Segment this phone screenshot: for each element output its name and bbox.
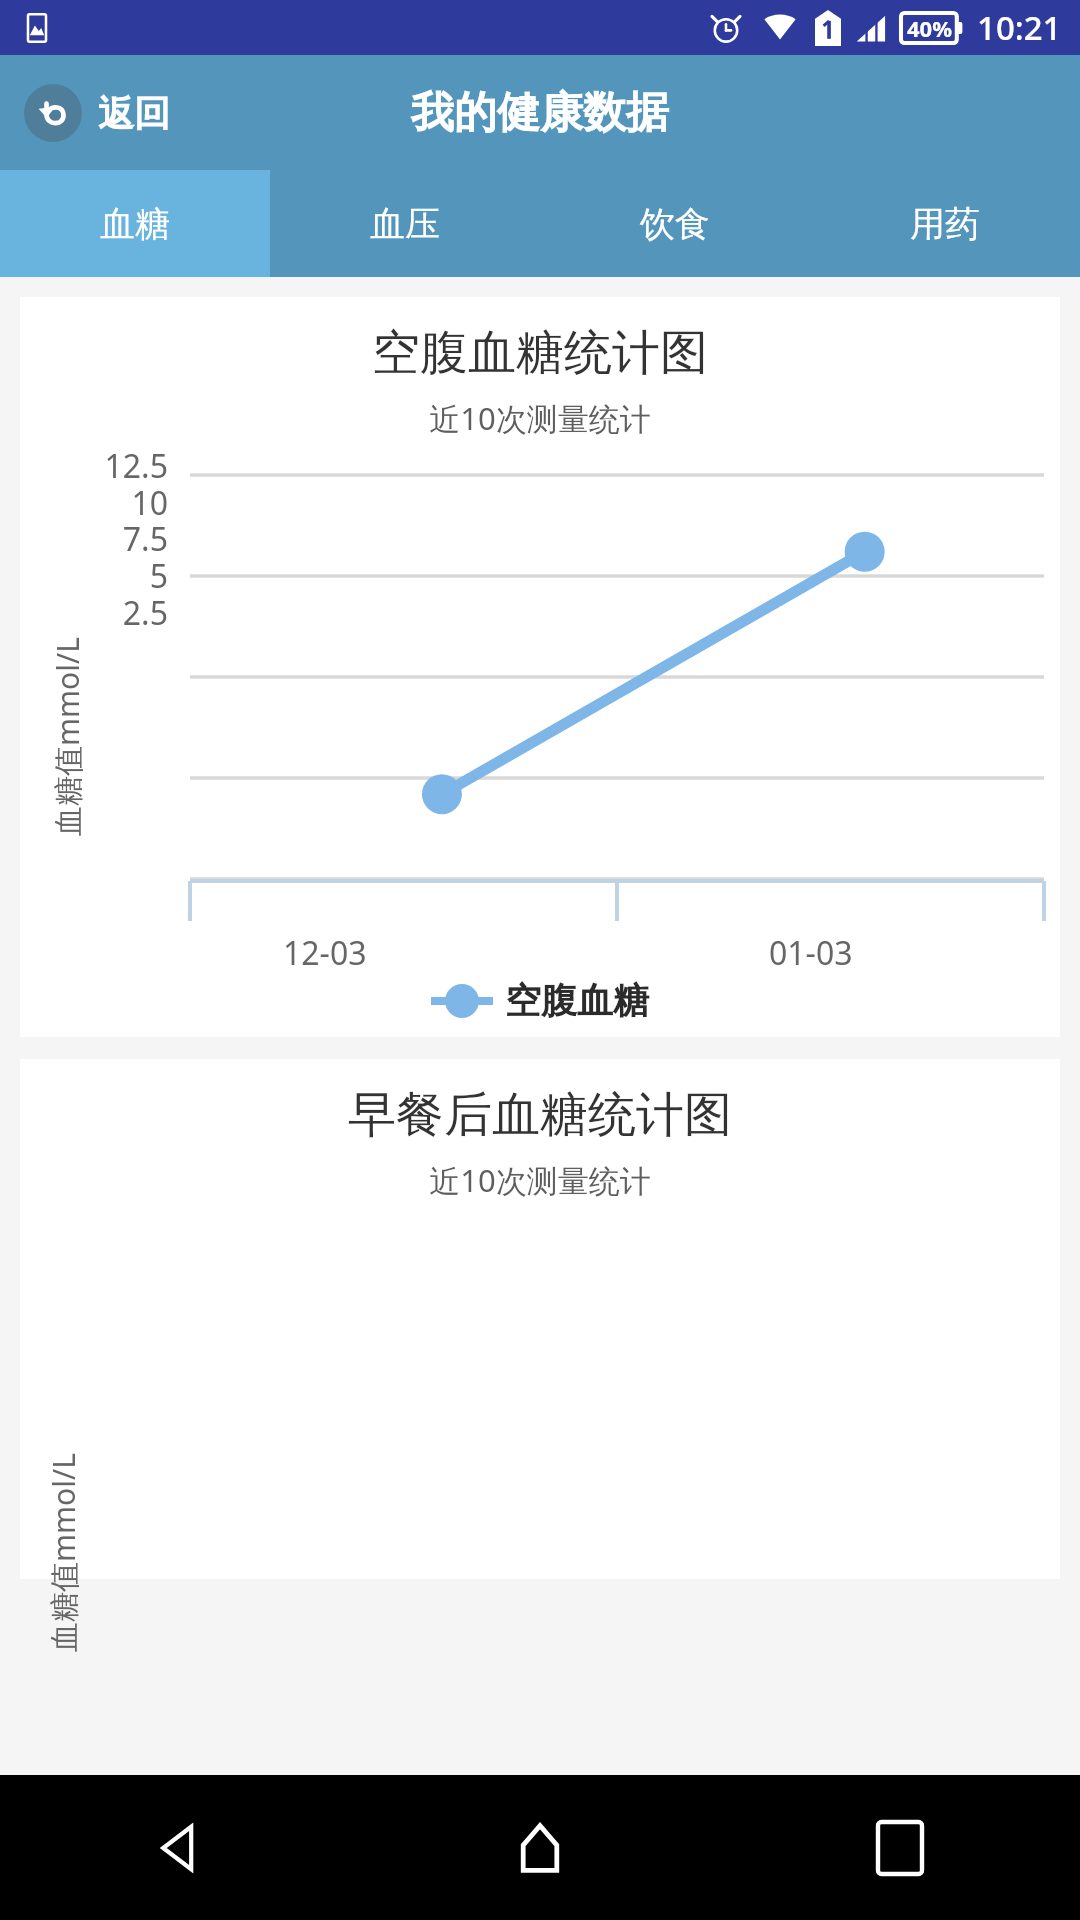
staticText: 近10次测量统计 bbox=[20, 397, 1060, 439]
staticText: 10:21 bbox=[977, 5, 1062, 50]
staticText: 血糖值mmol/L bbox=[47, 637, 88, 836]
staticText: 用药 bbox=[910, 202, 980, 246]
staticText: 我的健康数据 bbox=[411, 86, 669, 140]
button[interactable]: 返回 bbox=[18, 78, 176, 148]
staticText: 5 bbox=[20, 554, 168, 598]
staticText: 12-03 bbox=[283, 931, 367, 975]
staticText: 12.5 bbox=[20, 444, 168, 488]
staticText: 7.5 bbox=[20, 517, 168, 561]
staticText: 饮食 bbox=[640, 202, 710, 246]
button[interactable]: 血压 bbox=[270, 170, 540, 277]
staticText: 01-03 bbox=[769, 931, 853, 975]
button[interactable]: 饮食 bbox=[540, 170, 810, 277]
button[interactable]: 早餐后血糖统计图 bbox=[20, 1059, 1060, 1579]
staticText: 近10次测量统计 bbox=[20, 1159, 1060, 1201]
staticText: 2.5 bbox=[20, 591, 168, 635]
staticText: 40% bbox=[907, 13, 953, 43]
staticText: 返回 bbox=[98, 91, 170, 136]
staticText: 空腹血糖 bbox=[505, 978, 649, 1023]
staticText: 10 bbox=[20, 481, 168, 525]
staticText: 血糖 bbox=[100, 202, 170, 246]
button[interactable]: Home bbox=[360, 1775, 720, 1920]
button[interactable]: Back bbox=[0, 1775, 360, 1920]
button[interactable]: 空腹血糖统计图 bbox=[20, 297, 1060, 1037]
button[interactable]: 用药 bbox=[810, 170, 1080, 277]
staticText: 早餐后血糖统计图 bbox=[20, 1085, 1060, 1145]
button[interactable]: 血糖 bbox=[0, 170, 270, 277]
staticText: 血糖值mmol/L bbox=[43, 1453, 84, 1652]
staticText: 空腹血糖统计图 bbox=[20, 323, 1060, 383]
staticText: 血压 bbox=[370, 202, 440, 246]
button[interactable]: Recent apps bbox=[720, 1775, 1080, 1920]
